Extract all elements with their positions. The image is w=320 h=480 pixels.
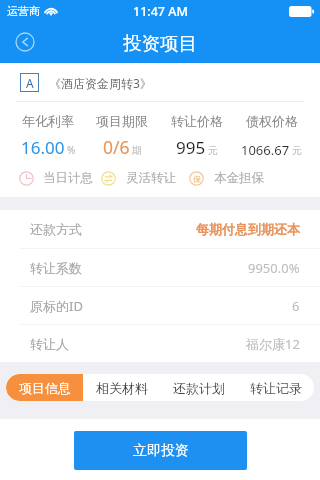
button[interactable]: 相关材料 — [83, 374, 160, 401]
staticText: 转让记录 — [250, 380, 302, 396]
staticText: 还款计划 — [173, 380, 225, 396]
staticText: 投资项目 — [123, 32, 197, 55]
staticText: A — [26, 75, 34, 91]
staticText: 本金担保 — [214, 170, 264, 186]
staticText: 转让系数 — [30, 260, 82, 276]
staticText: 原标的ID — [30, 297, 83, 315]
button[interactable]: 转让记录 — [237, 374, 314, 401]
staticText: % — [67, 143, 76, 157]
button[interactable]: Back — [15, 32, 35, 52]
staticText: 0/6 — [103, 135, 130, 159]
staticText: 元 — [292, 144, 302, 157]
staticText: 运营商 — [7, 4, 40, 18]
staticText: 9950.0% — [248, 259, 300, 277]
staticText: 转让人 — [30, 336, 69, 352]
staticText: 每期付息到期还本 — [196, 221, 300, 237]
staticText: 还款方式 — [30, 221, 82, 237]
staticText: 16.00 — [21, 136, 65, 159]
staticText: 6 — [292, 297, 300, 315]
button[interactable]: 转让人 — [0, 325, 320, 362]
staticText: 立即投资 — [133, 442, 189, 460]
staticText: 福尔康12 — [246, 335, 300, 353]
button[interactable]: 转让系数 — [0, 249, 320, 286]
staticText: 债权价格 — [246, 113, 298, 129]
staticText: 元 — [208, 144, 218, 157]
staticText: 年化利率 — [22, 113, 74, 129]
button[interactable]: 立即投资 — [74, 431, 247, 470]
staticText: 11:47 AM — [133, 3, 188, 20]
staticText: 灵活转让 — [126, 170, 176, 186]
staticText: 995 — [176, 136, 206, 159]
staticText: 当日计息 — [43, 170, 93, 186]
staticText: 项目期限 — [96, 113, 148, 129]
button[interactable]: 还款方式 — [0, 210, 320, 248]
staticText: 保 — [193, 174, 201, 184]
button[interactable]: 项目信息 — [6, 374, 83, 401]
button[interactable]: 还款计划 — [160, 374, 237, 401]
staticText: 相关材料 — [96, 380, 148, 396]
staticText: 转让价格 — [171, 113, 223, 129]
button[interactable]: 原标的ID — [0, 287, 320, 324]
staticText: 期 — [132, 144, 142, 157]
staticText: 项目信息 — [19, 380, 71, 396]
staticText: 1066.67 — [241, 141, 290, 159]
staticText: 《酒店资金周转3》 — [49, 75, 152, 91]
